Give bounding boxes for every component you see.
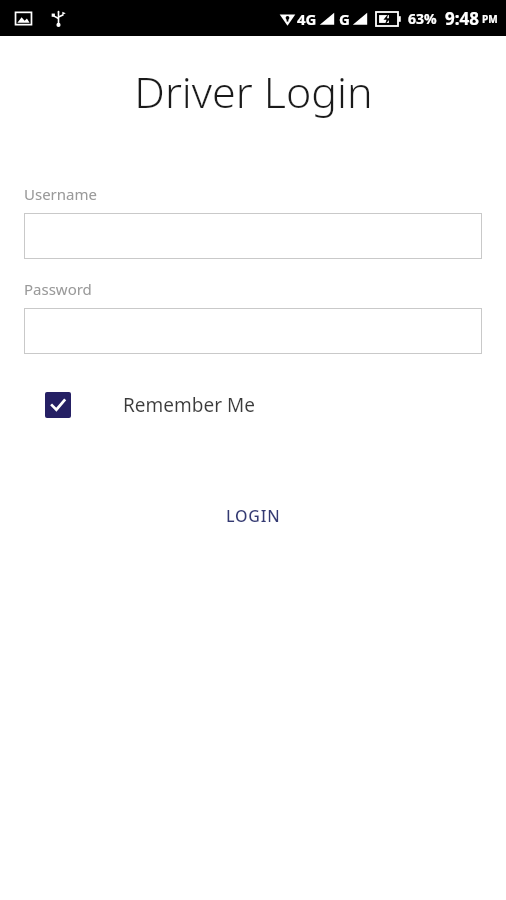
staticText: G [339, 9, 350, 29]
button[interactable]: Remember Me checkbox, checked [0, 385, 506, 425]
staticText: 4G [297, 9, 317, 29]
button[interactable] [24, 213, 482, 259]
staticText: 9:48 [445, 7, 479, 30]
button[interactable]: LOGIN [210, 497, 297, 535]
staticText: Remember Me [123, 392, 255, 418]
staticText: PM [482, 12, 498, 26]
staticText: LOGIN [226, 505, 281, 527]
staticText: 63% [408, 9, 437, 28]
staticText: Username [24, 184, 97, 204]
other: Remember Me checkbox, checked [45, 392, 71, 418]
staticText: Password [24, 279, 92, 299]
button[interactable] [24, 308, 482, 354]
staticText: Driver Login [134, 62, 373, 121]
